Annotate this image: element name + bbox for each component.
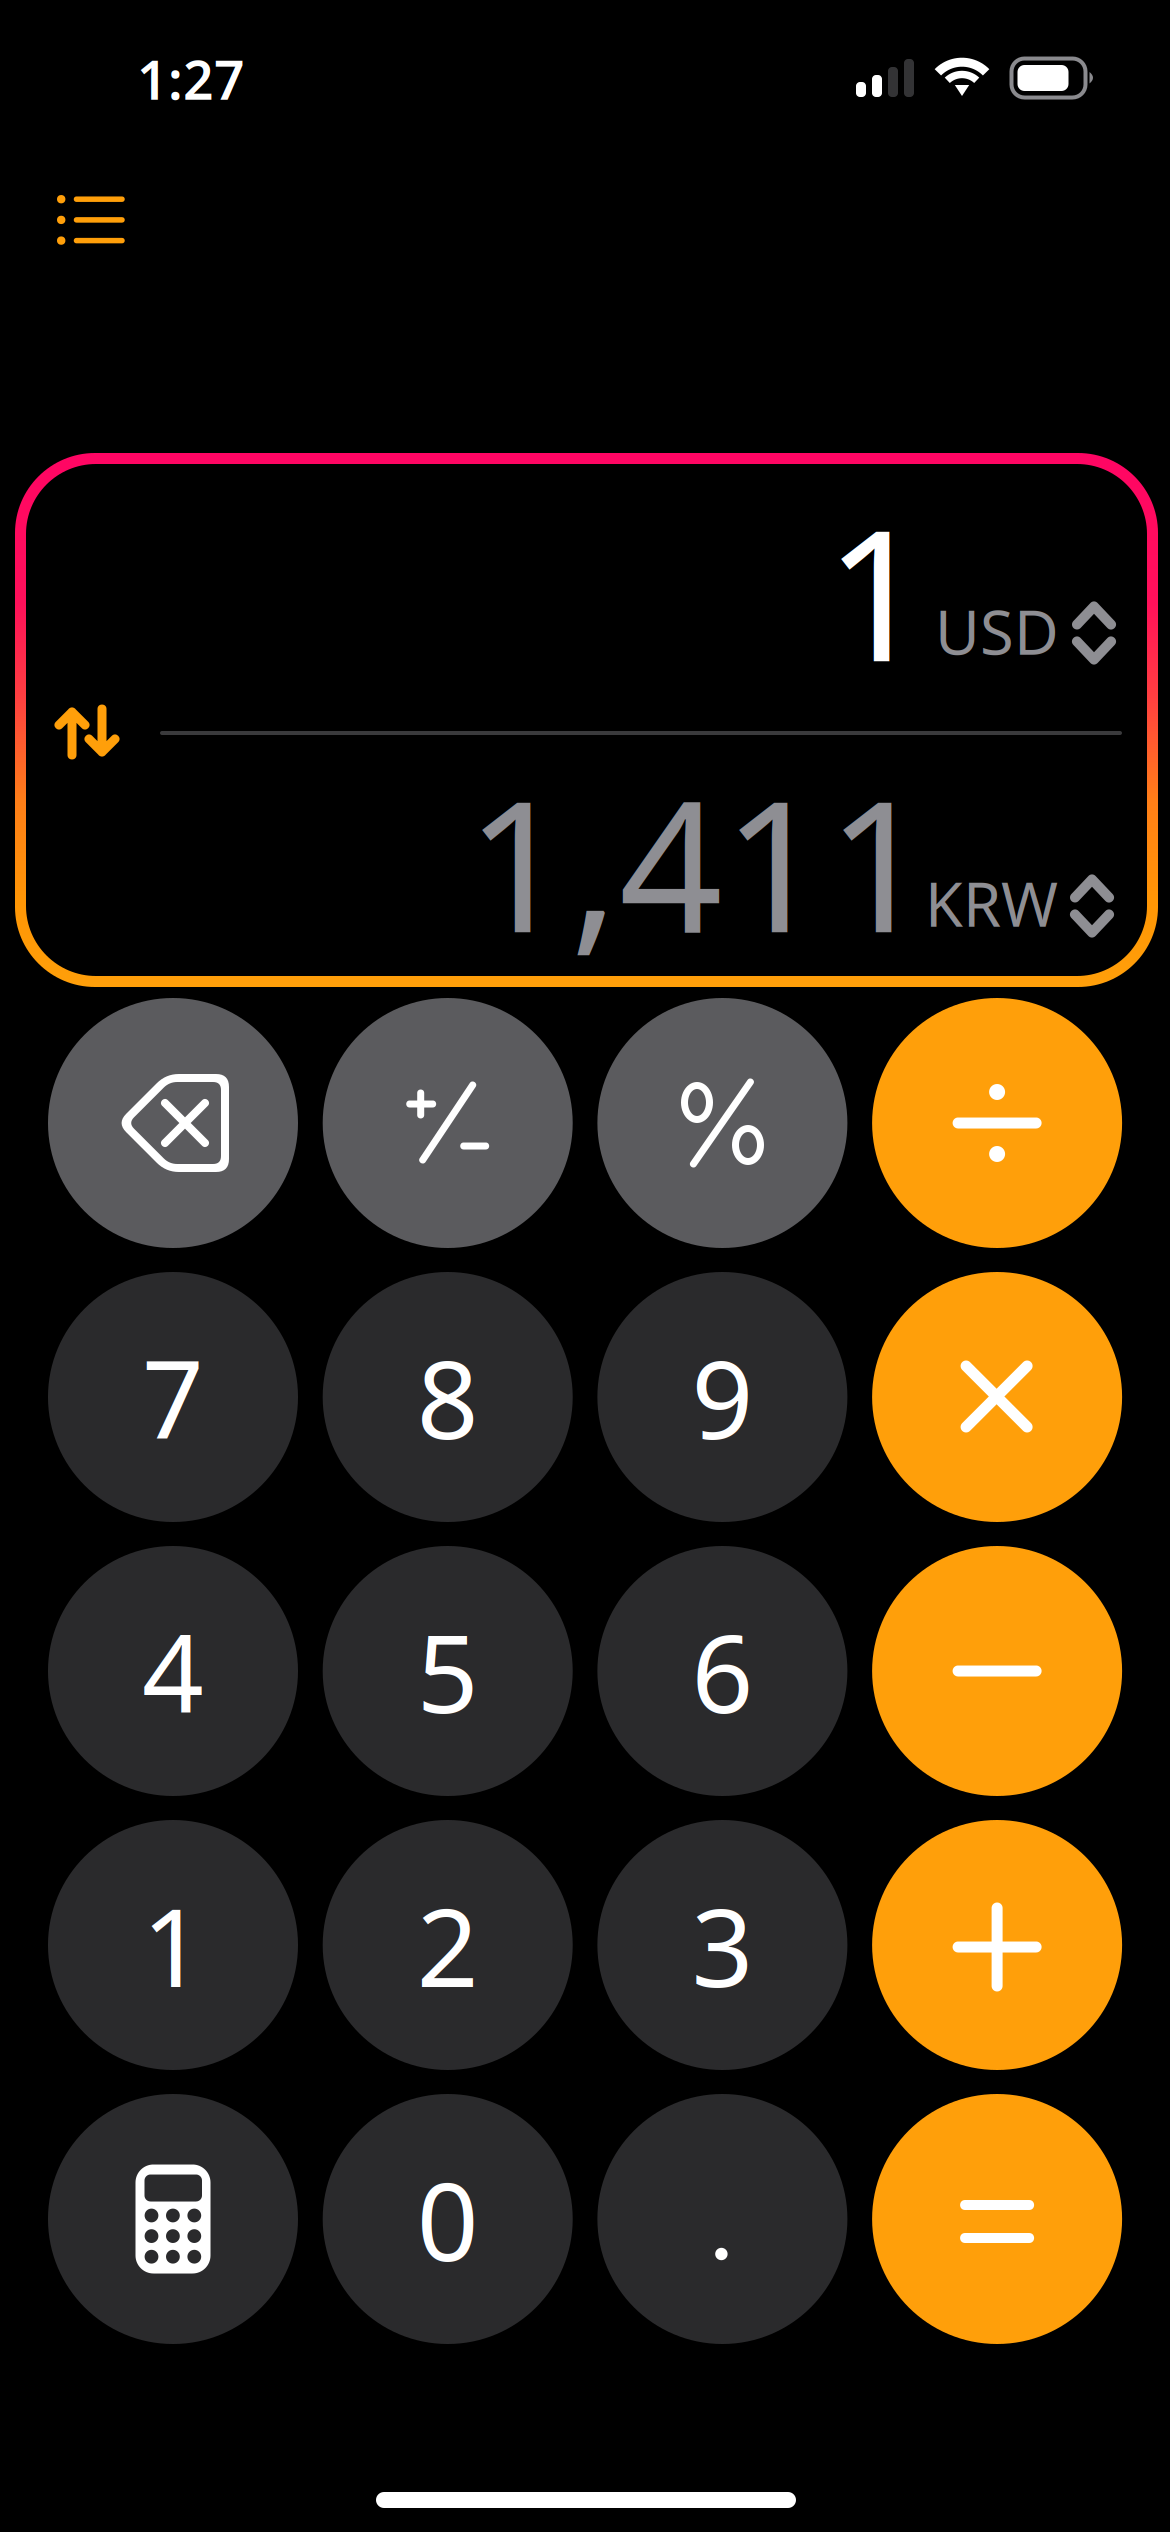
button[interactable]: 9 [597, 1272, 847, 1522]
staticText: 1:27 [137, 44, 245, 114]
staticText: 9 [691, 1325, 753, 1469]
staticText: 1 [142, 1873, 204, 2017]
staticText: 5 [417, 1599, 479, 1743]
staticText: 0 [417, 2147, 479, 2291]
button[interactable]: Decimal point [597, 2094, 847, 2344]
staticText: KRW [925, 862, 1058, 944]
button[interactable]: 8 [323, 1272, 573, 1522]
button[interactable]: 1 [48, 1820, 298, 2070]
staticText: 4 [142, 1599, 204, 1743]
button[interactable]: Calculator [48, 2094, 298, 2344]
button[interactable]: Change the source currency [1049, 578, 1139, 688]
staticText: 6 [691, 1599, 753, 1743]
button[interactable]: Delete [48, 998, 298, 1248]
staticText: 1,411 [466, 742, 931, 982]
staticText: 3 [691, 1873, 753, 2017]
staticText: 2 [417, 1873, 479, 2017]
button[interactable]: Multiply [872, 1272, 1122, 1522]
button[interactable]: Divide [872, 998, 1122, 1248]
button[interactable]: Equals [872, 2094, 1122, 2344]
staticText: 7 [142, 1325, 204, 1469]
button[interactable]: Subtract [872, 1546, 1122, 1796]
button[interactable]: 5 [323, 1546, 573, 1796]
button[interactable]: Conversion history [0, 145, 186, 295]
button[interactable]: 0 [323, 2094, 573, 2344]
button[interactable]: 4 [48, 1546, 298, 1796]
button[interactable]: 6 [597, 1546, 847, 1796]
button[interactable]: Toggle sign [323, 998, 573, 1248]
button[interactable]: Change the target currency [1047, 851, 1137, 961]
button[interactable]: Percent [597, 998, 847, 1248]
staticText: 1 [825, 471, 929, 711]
button[interactable]: 3 [597, 1820, 847, 2070]
staticText: USD [935, 590, 1059, 672]
button[interactable]: Add [872, 1820, 1122, 2070]
button[interactable]: 7 [48, 1272, 298, 1522]
button[interactable]: 2 [323, 1820, 573, 2070]
staticText: 8 [417, 1325, 479, 1469]
button[interactable]: Swap currencies [32, 682, 142, 782]
